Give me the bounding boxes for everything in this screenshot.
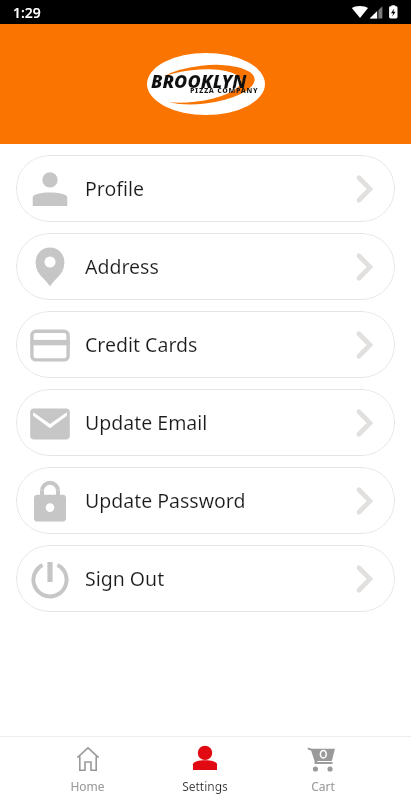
staticText: Address bbox=[85, 253, 159, 280]
staticText: Credit Cards bbox=[85, 331, 198, 358]
button[interactable]: Update Password bbox=[16, 467, 395, 534]
staticText: PIZZA COMPANY bbox=[190, 86, 259, 96]
button[interactable]: Address bbox=[16, 233, 395, 300]
staticText: Settings bbox=[182, 778, 228, 794]
staticText: Update Email bbox=[85, 409, 208, 436]
staticText: Sign Out bbox=[85, 565, 165, 592]
staticText: Profile bbox=[85, 175, 145, 202]
staticText: Home bbox=[70, 778, 105, 794]
staticText: BROOKLYN bbox=[151, 69, 247, 94]
staticText: Update Password bbox=[85, 487, 246, 514]
button[interactable]: Settings bbox=[146, 737, 264, 800]
button[interactable]: Sign Out bbox=[16, 545, 395, 612]
staticText: 1:29 bbox=[13, 3, 41, 22]
button[interactable]: Cart bbox=[264, 737, 382, 800]
button[interactable]: Profile bbox=[16, 155, 395, 222]
button[interactable]: Home bbox=[29, 737, 146, 800]
staticText: Cart bbox=[311, 778, 335, 794]
button[interactable]: Update Email bbox=[16, 389, 395, 456]
button[interactable]: Credit Cards bbox=[16, 311, 395, 378]
